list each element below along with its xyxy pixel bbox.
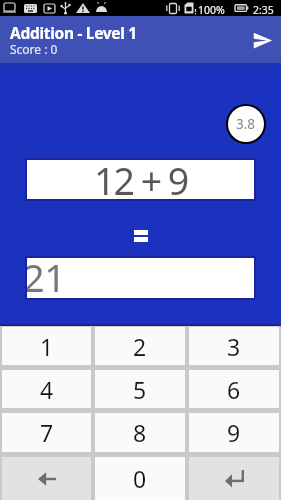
button[interactable]: 3 <box>189 327 279 365</box>
staticText: Score : 0 <box>10 41 58 57</box>
staticText: 8 <box>133 417 147 448</box>
staticText: 12 + 9 <box>94 155 188 198</box>
button[interactable]: 5 <box>95 370 185 408</box>
button[interactable]: 0 <box>95 457 185 500</box>
staticText: 3 <box>227 331 241 362</box>
button[interactable] <box>2 457 91 500</box>
staticText: 3.8 <box>236 115 256 133</box>
button[interactable]: 2 <box>95 327 185 365</box>
staticText: 100% <box>198 3 225 17</box>
button[interactable]: 4 <box>2 370 91 408</box>
staticText: 1 <box>40 331 54 362</box>
button[interactable]: 6 <box>189 370 279 408</box>
staticText: Addition - Level 1 <box>10 22 137 43</box>
button[interactable]: 8 <box>95 413 185 452</box>
staticText: 9 <box>227 417 241 448</box>
staticText: 0 <box>133 463 147 494</box>
button[interactable]: 1 <box>2 327 91 365</box>
button[interactable]: 9 <box>189 413 279 452</box>
staticText: 2 <box>133 331 147 362</box>
button[interactable] <box>189 457 279 500</box>
staticText: 21 <box>23 251 66 295</box>
staticText: 2:35 <box>253 3 274 17</box>
staticText: 7 <box>40 417 54 448</box>
staticText: 6 <box>227 374 241 405</box>
staticText: 5 <box>133 374 147 405</box>
staticText: 4 <box>40 374 54 405</box>
button[interactable]: 7 <box>2 413 91 452</box>
button[interactable] <box>245 23 279 57</box>
